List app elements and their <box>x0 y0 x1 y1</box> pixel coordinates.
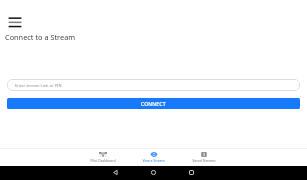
staticText: Enter stream Link or PIN <box>15 83 62 89</box>
staticText: Saved Streams <box>192 158 216 163</box>
staticText: Connect to a Stream <box>5 32 76 42</box>
staticText: View a Stream <box>142 158 165 163</box>
button[interactable]: Enter stream Link or PIN <box>7 79 300 91</box>
button[interactable]: Open navigation menu <box>2 11 28 32</box>
button[interactable]: CONNECT <box>7 98 300 109</box>
button[interactable]: View a Stream <box>128 149 179 166</box>
button[interactable]: Home <box>134 165 172 179</box>
button[interactable]: Pilot Dashboard <box>77 149 128 166</box>
button[interactable]: Recents <box>172 165 210 179</box>
staticText: CONNECT <box>141 101 166 108</box>
button[interactable]: Saved Streams <box>179 149 230 166</box>
button[interactable]: Back <box>96 165 134 179</box>
staticText: Pilot Dashboard <box>90 158 116 163</box>
